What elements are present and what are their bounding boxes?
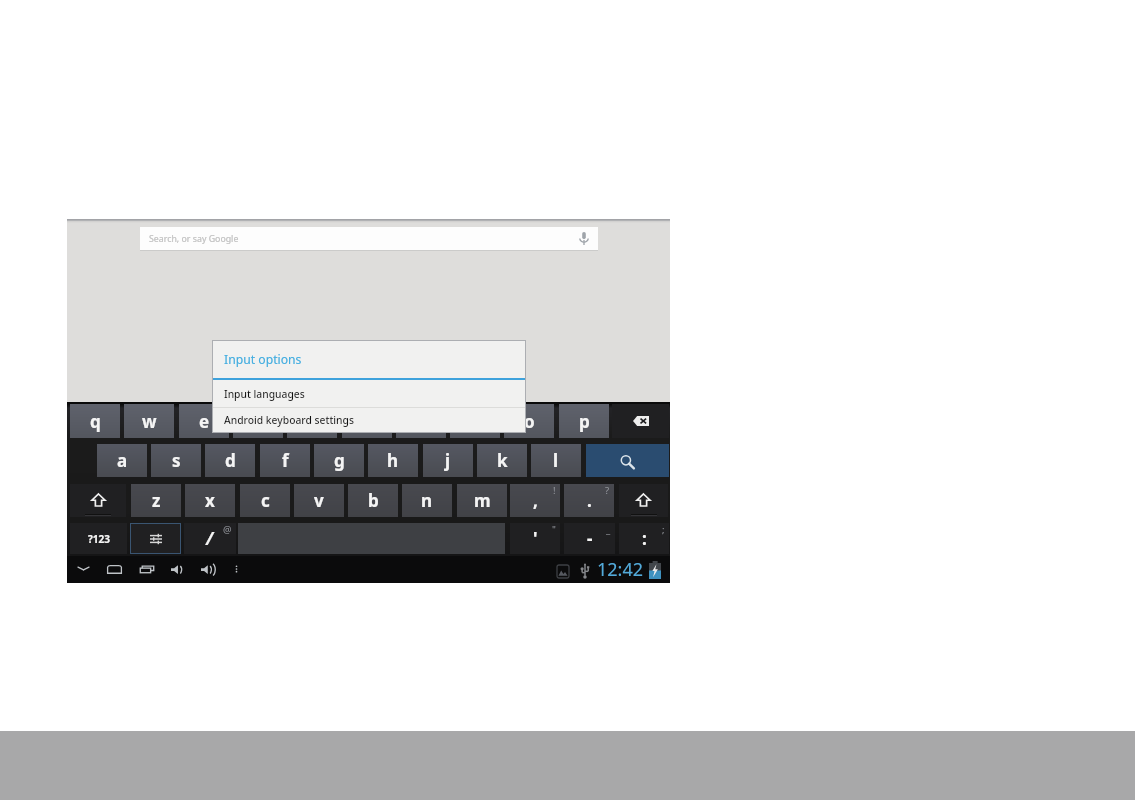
button[interactable]: k — [477, 444, 527, 477]
staticText: z — [152, 489, 161, 512]
button[interactable]: c — [240, 484, 290, 517]
button[interactable]: i — [450, 404, 500, 438]
staticText: w — [142, 410, 157, 433]
staticText: c — [261, 489, 270, 512]
staticText: 12:42 — [597, 557, 644, 580]
button[interactable]: Android keyboard settings — [213, 408, 525, 432]
button[interactable]: ' — [510, 523, 560, 554]
staticText: : — [642, 527, 647, 550]
button[interactable]: n — [402, 484, 452, 517]
staticText: r — [254, 410, 262, 433]
button[interactable]: Shift — [70, 484, 126, 517]
button[interactable]: j — [423, 444, 473, 477]
button[interactable]: s — [151, 444, 201, 477]
staticText: ! — [553, 484, 556, 497]
button[interactable]: z — [131, 484, 181, 517]
staticText: Android keyboard settings — [224, 413, 354, 427]
staticText: @ — [223, 523, 232, 536]
button[interactable]: l — [531, 444, 581, 477]
staticText: l — [553, 449, 559, 472]
button[interactable]: p — [559, 404, 609, 438]
staticText: ' — [533, 527, 538, 550]
other: Voice search — [579, 232, 589, 245]
button[interactable]: m — [457, 484, 507, 517]
staticText: f — [282, 449, 289, 472]
staticText: ? — [605, 484, 610, 497]
button[interactable]: o — [504, 404, 554, 438]
staticText: s — [172, 449, 181, 472]
button[interactable]: Home — [107, 561, 122, 578]
button[interactable]: f — [260, 444, 310, 477]
button[interactable]: a — [97, 444, 147, 477]
staticText: ?123 — [88, 532, 110, 546]
button[interactable]: / — [184, 523, 236, 554]
button[interactable]: Search, or say Google — [140, 227, 598, 250]
button[interactable]: Input languages — [213, 380, 525, 407]
staticText: a — [117, 449, 128, 472]
staticText: g — [334, 449, 345, 472]
button[interactable]: t — [287, 404, 337, 438]
staticText: h — [387, 449, 399, 472]
button[interactable]: d — [205, 444, 255, 477]
staticText: / — [206, 527, 214, 550]
button[interactable]: : — [619, 523, 669, 554]
button[interactable]: Input settings — [130, 523, 181, 554]
button[interactable]: e — [179, 404, 229, 438]
staticText: d — [225, 449, 236, 472]
button[interactable]: , — [510, 484, 560, 517]
button[interactable]: q — [70, 404, 120, 438]
staticText: ; — [662, 523, 665, 536]
staticText: v — [314, 489, 324, 512]
button[interactable]: y — [342, 404, 392, 438]
staticText: t — [308, 410, 316, 433]
staticText: x — [205, 489, 215, 512]
staticText: Input languages — [224, 387, 305, 401]
button[interactable]: h — [368, 444, 418, 477]
button[interactable]: w — [124, 404, 174, 438]
button[interactable]: Search — [586, 444, 669, 477]
staticText: Input options — [224, 351, 302, 368]
staticText: y — [362, 410, 372, 433]
button[interactable]: Volume down — [171, 561, 183, 578]
staticText: k — [497, 449, 508, 472]
button[interactable]: Back — [78, 561, 89, 578]
button[interactable]: u — [396, 404, 446, 438]
button[interactable]: Volume up — [201, 561, 216, 578]
button[interactable]: b — [348, 484, 398, 517]
button[interactable]: Shift — [619, 484, 668, 517]
staticText: - — [587, 527, 593, 550]
staticText: i — [472, 410, 478, 433]
staticText: j — [445, 449, 451, 472]
button[interactable]: x — [185, 484, 235, 517]
button[interactable]: r — [233, 404, 283, 438]
staticText: _ — [606, 523, 611, 536]
staticText: " — [552, 523, 556, 536]
staticText: , — [533, 489, 538, 512]
button[interactable]: ?123 — [70, 523, 127, 554]
staticText: u — [415, 410, 427, 433]
staticText: p — [579, 410, 590, 433]
staticText: e — [199, 410, 210, 433]
staticText: n — [421, 489, 433, 512]
button[interactable]: . — [564, 484, 614, 517]
staticText: q — [90, 410, 101, 433]
staticText: Search, or say Google — [149, 233, 239, 245]
button[interactable]: Recent apps — [140, 561, 154, 578]
button[interactable]: v — [294, 484, 344, 517]
staticText: b — [368, 489, 379, 512]
button[interactable]: Backspace — [612, 404, 669, 438]
button[interactable]: More options — [233, 561, 240, 578]
button[interactable]: g — [314, 444, 364, 477]
staticText: m — [474, 489, 491, 512]
staticText: . — [587, 489, 592, 512]
button[interactable]: - — [564, 523, 615, 554]
button[interactable]: Input options — [213, 341, 525, 378]
staticText: o — [524, 410, 535, 433]
